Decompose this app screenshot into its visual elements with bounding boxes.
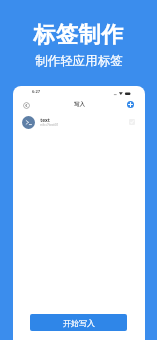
button[interactable]: text — [13, 113, 145, 131]
staticText: 开始写入 — [63, 318, 95, 328]
staticText: 制作轻应用标签 — [35, 53, 123, 69]
button[interactable]: Add — [127, 101, 134, 108]
staticText: 标签制作 — [33, 21, 124, 49]
staticText: text — [40, 117, 50, 124]
button[interactable]: 开始写入 — [30, 314, 127, 331]
button[interactable]: Back — [23, 102, 30, 109]
staticText: nfc://text01 — [40, 122, 59, 127]
staticText: 6:27 — [32, 89, 40, 94]
staticText: 写入 — [74, 101, 85, 108]
